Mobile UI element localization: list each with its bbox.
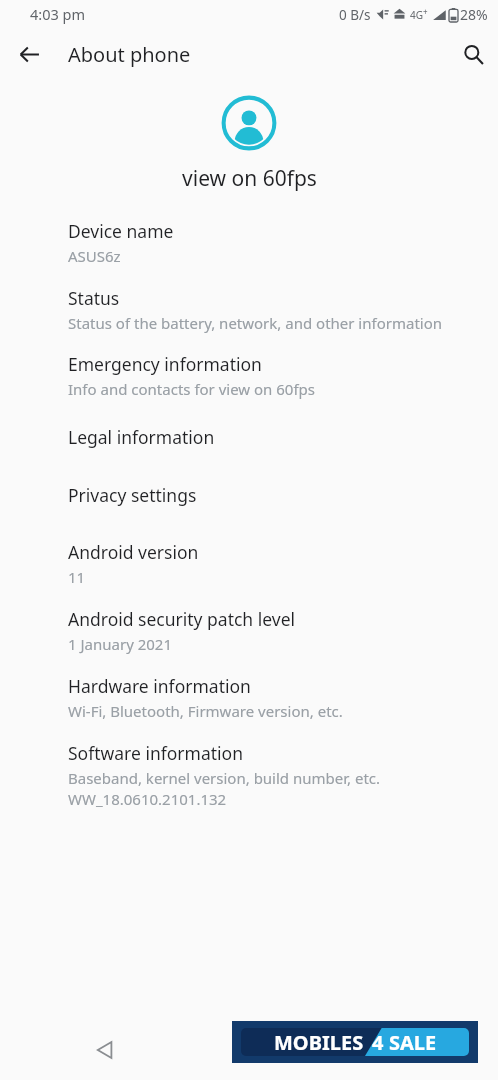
staticText: Info and contacts for view on 60fps (68, 379, 316, 399)
staticText: 0 B/s (339, 6, 371, 24)
staticText: Baseband, kernel version, build number, … (68, 768, 381, 810)
staticText: About phone (68, 41, 191, 68)
button[interactable]: Back (80, 1025, 130, 1075)
staticText: Emergency information (68, 352, 262, 376)
staticText: view on 60fps (182, 164, 317, 193)
button[interactable]: Privacy settings (0, 449, 498, 507)
staticText: Software information (68, 741, 243, 765)
button[interactable]: Emergency information (0, 333, 498, 399)
staticText: 4 (372, 1029, 384, 1056)
button[interactable]: Android security patch level (0, 587, 498, 654)
staticText: Wi-Fi, Bluetooth, Firmware version, etc. (68, 701, 343, 721)
staticText: ASUS6z (68, 246, 121, 266)
staticText: Status of the battery, network, and othe… (68, 313, 443, 333)
button[interactable]: Status (0, 266, 498, 333)
staticText: + (423, 6, 428, 17)
button[interactable]: Android version (0, 507, 498, 587)
staticText: Device name (68, 219, 174, 243)
staticText: MOBILES (274, 1029, 364, 1056)
button[interactable]: Legal information (0, 399, 498, 449)
staticText: 28% (460, 5, 488, 24)
staticText: 4:03 pm (30, 4, 86, 24)
staticText: 4G (410, 8, 423, 22)
staticText: 1 January 2021 (68, 634, 173, 654)
staticText: Privacy settings (68, 483, 197, 507)
button[interactable]: Hardware information (0, 654, 498, 721)
button[interactable]: Device name (0, 219, 498, 266)
staticText: Android security patch level (68, 607, 296, 631)
button[interactable]: Search (451, 32, 495, 76)
staticText: Legal information (68, 425, 215, 449)
staticText: SALE (389, 1029, 437, 1056)
button[interactable]: Back (7, 32, 51, 76)
staticText: Status (68, 286, 120, 310)
staticText: Android version (68, 540, 199, 564)
button[interactable]: Software information (0, 721, 498, 810)
staticText: Hardware information (68, 674, 251, 698)
staticText: 11 (68, 567, 86, 587)
